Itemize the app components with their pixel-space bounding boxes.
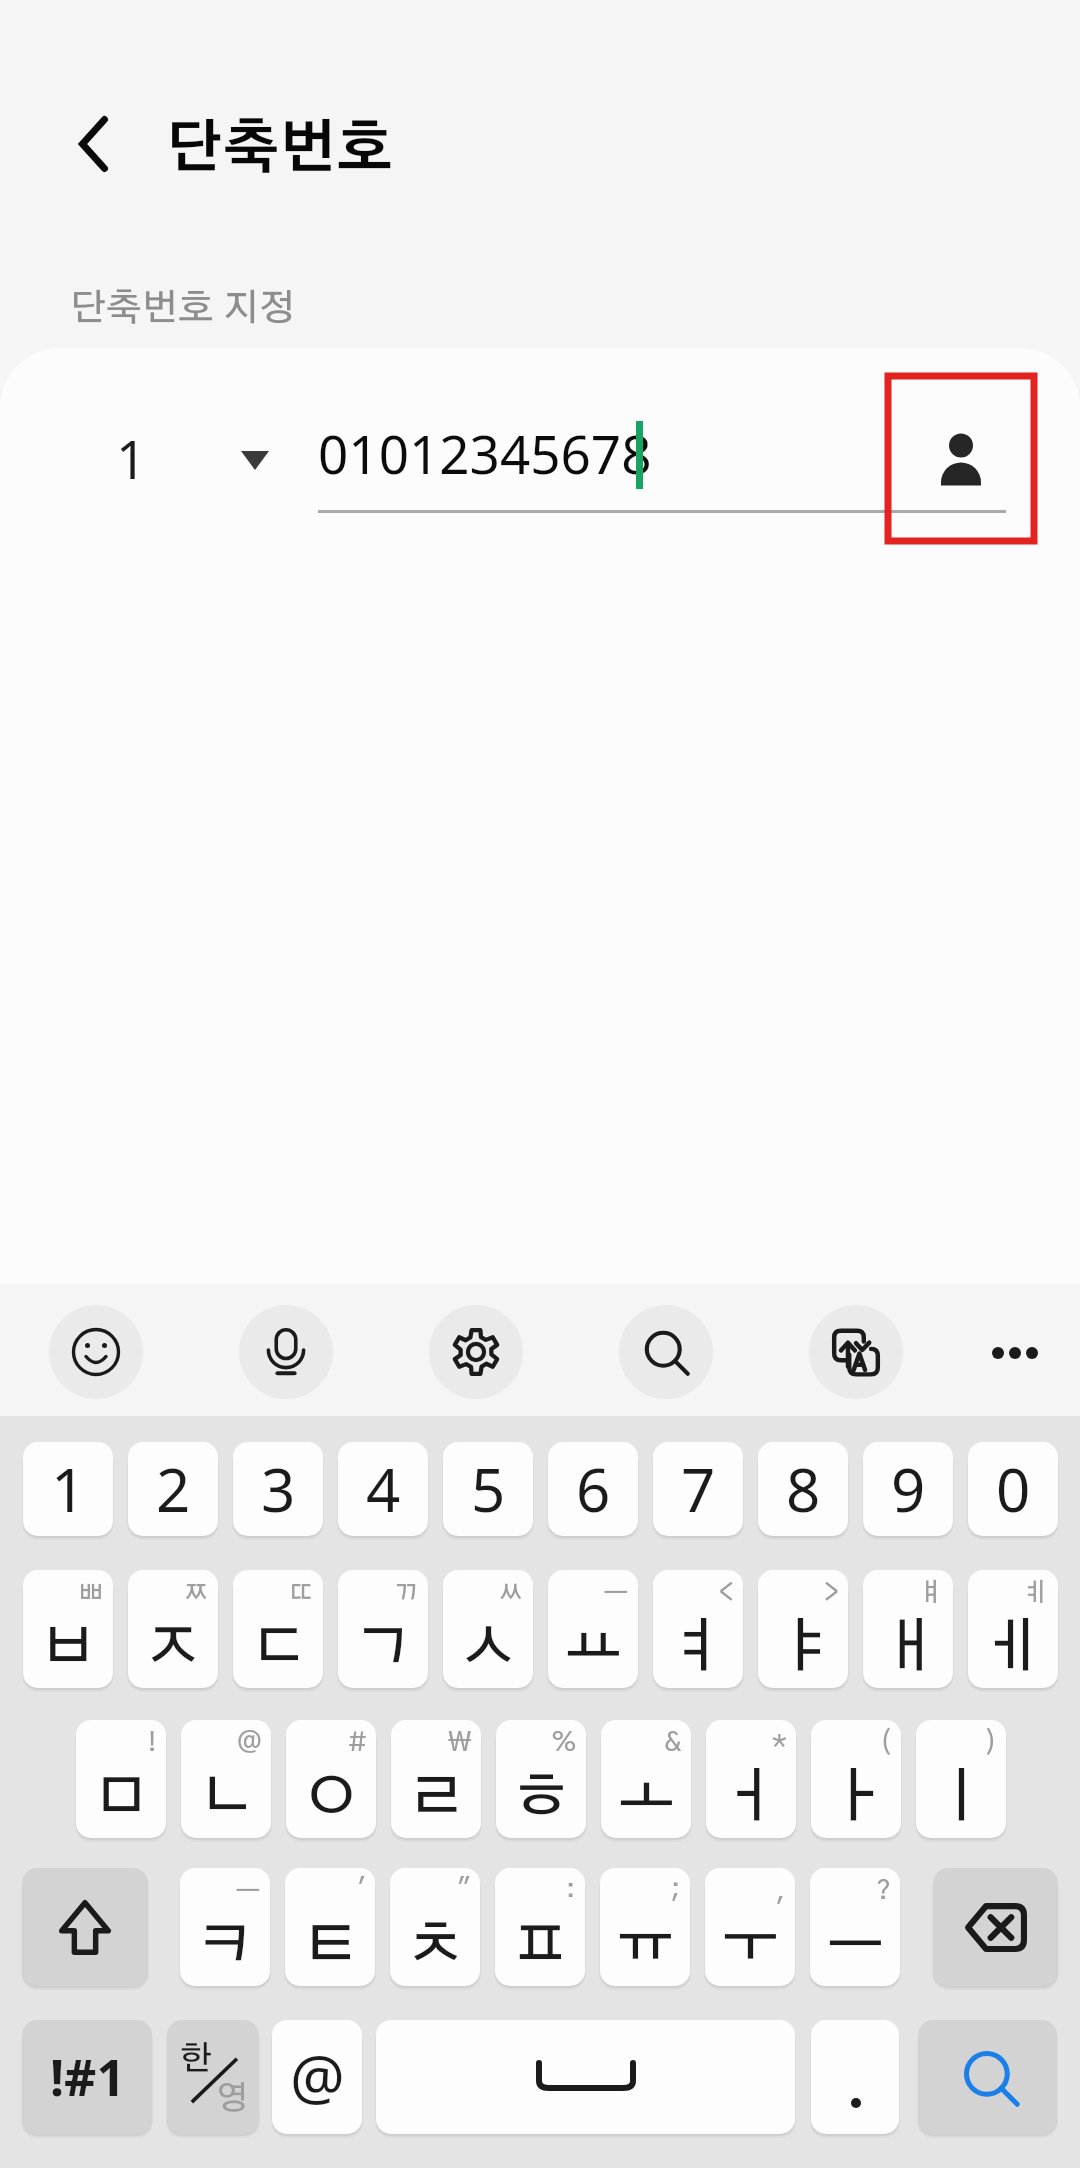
staticText: ㄹ [407,1769,466,1828]
staticText: ㅜ [721,1917,780,1976]
button[interactable]: ㅇ [286,1720,376,1838]
button[interactable]: ㅛ [548,1570,638,1688]
staticText: # [348,1730,367,1756]
button[interactable]: More options [959,1297,1070,1408]
staticText: ㅌ [301,1917,360,1976]
staticText: 2 [156,1448,191,1530]
button[interactable]: Voice input [239,1305,333,1399]
staticText: ㅔ [984,1619,1043,1678]
staticText: ㅊ [406,1917,465,1976]
button[interactable]: ㅍ [495,1868,585,1986]
button[interactable]: ㅎ [496,1720,586,1838]
button[interactable]: 1 [80,410,280,528]
staticText: ㅖ [1023,1580,1049,1606]
staticText: 단축번호 지정 [70,290,295,327]
button[interactable]: ㅋ [180,1868,270,1986]
staticText: ㅣ [932,1769,991,1828]
button[interactable]: ㅈ [128,1570,218,1688]
button[interactable]: ㄹ [391,1720,481,1838]
button[interactable]: 2 [128,1442,218,1536]
button[interactable]: ㅁ [76,1720,166,1838]
button[interactable]: ㅓ [706,1720,796,1838]
button[interactable]: ㅗ [601,1720,691,1838]
button[interactable]: Period [811,2020,899,2134]
button[interactable]: ㅔ [968,1570,1058,1688]
staticText: ㅂ [39,1619,98,1678]
staticText: > [824,1580,839,1606]
button[interactable]: ㄷ [233,1570,323,1688]
button[interactable]: ㅠ [600,1868,690,1986]
button[interactable]: Emoji [49,1305,143,1399]
staticText: @ [237,1730,262,1756]
staticText: ( [880,1730,892,1756]
button[interactable]: ㅅ [443,1570,533,1688]
staticText: ' [357,1878,366,1904]
staticText: 5 [471,1448,506,1530]
button[interactable]: 6 [548,1442,638,1536]
button[interactable]: Choose contact [885,373,1037,544]
button[interactable]: Translate [809,1305,903,1399]
button[interactable]: ㅕ [653,1570,743,1688]
staticText: : [566,1878,576,1904]
button[interactable]: Search [619,1305,713,1399]
button[interactable]: 3 [233,1442,323,1536]
button[interactable]: ㅑ [758,1570,848,1688]
staticText: ㅛ [564,1619,623,1678]
staticText: * [772,1730,787,1756]
button[interactable]: ㄴ [181,1720,271,1838]
button[interactable]: Space [376,2020,795,2134]
staticText: ㅡ [603,1580,629,1606]
button[interactable]: ㅊ [390,1868,480,1986]
button[interactable]: Backspace [933,1868,1058,1986]
staticText: ㅋ [196,1917,255,1976]
staticText: 7 [681,1448,716,1530]
staticText: 단축번호 [166,122,394,179]
staticText: ㅏ [827,1769,886,1828]
staticText: @ [290,2034,345,2117]
button[interactable]: 8 [758,1442,848,1536]
staticText: ) [985,1730,997,1756]
staticText: ㄷ [249,1619,308,1678]
staticText: ; [671,1878,681,1904]
staticText: ㅃ [78,1580,104,1606]
button[interactable]: 5 [443,1442,533,1536]
staticText: ㅆ [498,1580,524,1606]
button[interactable]: Back [37,88,149,200]
staticText: ㅍ [511,1917,570,1976]
button[interactable]: !#1 [22,2020,152,2134]
button[interactable]: 7 [653,1442,743,1536]
staticText: ㅉ [183,1580,209,1606]
staticText: ㅡ [826,1917,885,1976]
button[interactable]: ㅐ [863,1570,953,1688]
button[interactable]: Search [918,2020,1057,2134]
button[interactable]: Change language [167,2020,259,2134]
button[interactable]: ㅂ [23,1570,113,1688]
staticText: ? [876,1878,891,1904]
staticText: , [776,1878,786,1904]
button[interactable]: 9 [863,1442,953,1536]
staticText: ㅡ [235,1878,261,1904]
staticText: % [551,1730,577,1756]
button[interactable]: ㄱ [338,1570,428,1688]
button[interactable]: Shift [22,1868,148,1986]
button[interactable]: Keyboard settings [429,1305,523,1399]
button[interactable]: 4 [338,1442,428,1536]
staticText: 0 [996,1448,1031,1530]
staticText: ㄱ [354,1619,413,1678]
staticText: 1 [51,1448,86,1530]
button[interactable]: @ [272,2020,362,2134]
button[interactable]: ㅏ [811,1720,901,1838]
staticText: ㅒ [918,1580,944,1606]
button[interactable]: ㅣ [916,1720,1006,1838]
button[interactable]: ㅌ [285,1868,375,1986]
button[interactable]: ㅜ [705,1868,795,1986]
staticText: & [664,1730,682,1756]
staticText: 한 [180,2043,213,2076]
button[interactable]: 1 [23,1442,113,1536]
staticText: ₩ [448,1730,472,1756]
button[interactable]: 0 [968,1442,1058,1536]
staticText: 3 [261,1448,296,1530]
button[interactable]: ㅡ [810,1868,900,1986]
staticText: ㅑ [774,1619,833,1678]
staticText: ㅐ [879,1619,938,1678]
